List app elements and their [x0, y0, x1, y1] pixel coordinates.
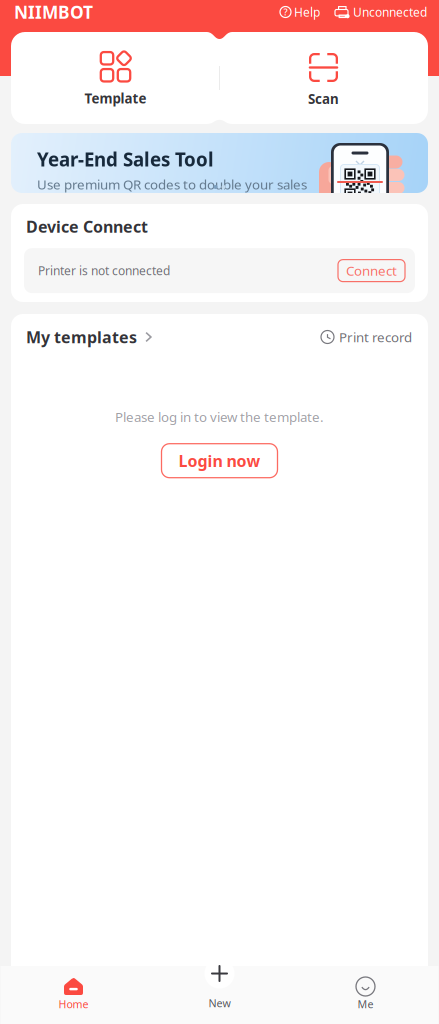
- button[interactable]: Print record: [321, 320, 428, 354]
- staticText: Print record: [339, 328, 412, 346]
- staticText: Login now: [178, 450, 260, 471]
- staticText: NIIMBOT: [14, 0, 93, 23]
- button[interactable]: Login now: [161, 444, 277, 478]
- button[interactable]: ?: [280, 0, 320, 25]
- staticText: Help: [294, 4, 320, 20]
- button[interactable]: Me: [292, 966, 438, 1024]
- staticText: Year-End Sales Tool: [37, 147, 214, 172]
- button[interactable]: My templates: [11, 318, 152, 356]
- staticText: Device Connect: [26, 216, 148, 237]
- staticText: Use premium QR codes to double your sale…: [37, 175, 307, 193]
- staticText: Scan: [308, 90, 339, 108]
- staticText: New: [208, 996, 230, 1010]
- button[interactable]: Unconnected: [320, 0, 427, 25]
- button[interactable]: Template: [11, 32, 219, 124]
- button[interactable]: Connect: [338, 260, 405, 282]
- staticText: ?: [283, 6, 287, 18]
- staticText: Me: [357, 997, 373, 1011]
- staticText: Connect: [346, 262, 397, 279]
- staticText: Please log in to view the template.: [115, 408, 324, 426]
- staticText: My templates: [26, 326, 137, 348]
- button[interactable]: Home: [0, 966, 146, 1024]
- staticText: Unconnected: [353, 4, 427, 20]
- staticText: Home: [58, 997, 88, 1011]
- button[interactable]: Year-End Sales Tool: [11, 133, 428, 193]
- button[interactable]: Scan: [219, 32, 427, 124]
- staticText: Printer is not connected: [38, 263, 170, 279]
- staticText: Template: [84, 89, 146, 107]
- button[interactable]: New: [146, 966, 292, 1024]
- button[interactable]: New: [202, 956, 236, 990]
